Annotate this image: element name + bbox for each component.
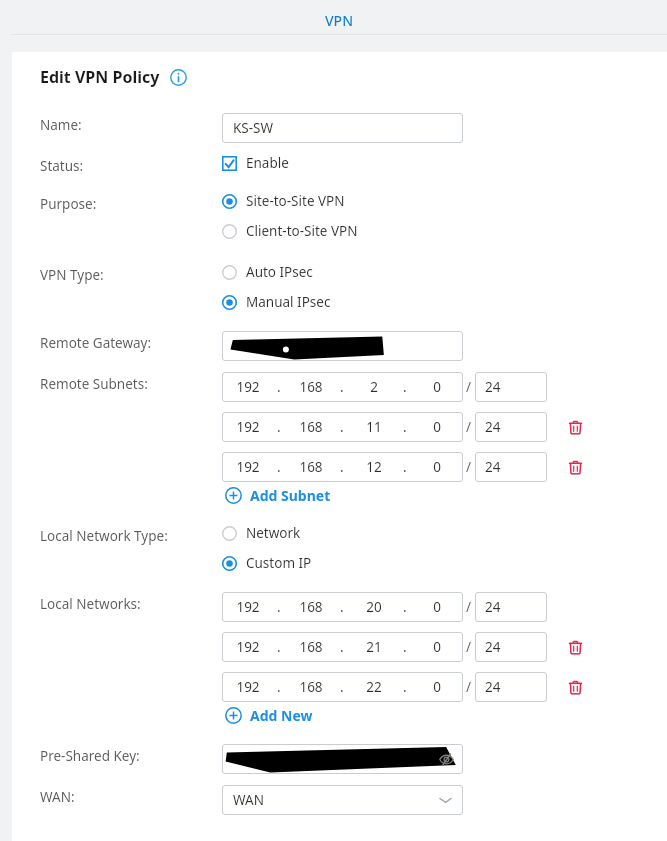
- staticText: .: [340, 458, 344, 476]
- staticText: 192: [236, 378, 260, 396]
- button[interactable]: Custom IP: [222, 554, 312, 572]
- staticText: .: [340, 678, 344, 696]
- staticText: 24: [485, 458, 501, 476]
- button[interactable]: 24: [475, 592, 547, 622]
- staticText: 0: [433, 378, 441, 396]
- staticText: 20: [366, 598, 382, 616]
- button[interactable]: Information: [169, 68, 187, 86]
- button[interactable]: Delete: [564, 416, 586, 438]
- button[interactable]: KS-SW: [222, 113, 463, 143]
- staticText: .: [403, 638, 407, 656]
- staticText: VPN Type:: [40, 266, 104, 284]
- staticText: Remote Gateway:: [40, 334, 152, 352]
- staticText: Local Networks:: [40, 595, 141, 613]
- staticText: 168: [299, 598, 323, 616]
- staticText: 24: [485, 638, 501, 656]
- staticText: 2: [370, 378, 378, 396]
- staticText: 12: [366, 458, 382, 476]
- staticText: .: [403, 678, 407, 696]
- button[interactable]: 24: [475, 632, 547, 662]
- staticText: /: [466, 678, 472, 696]
- staticText: WAN: [233, 791, 264, 809]
- staticText: 168: [299, 418, 323, 436]
- staticText: /: [466, 418, 472, 436]
- button[interactable]: Delete: [564, 456, 586, 478]
- staticText: 192: [236, 458, 260, 476]
- staticText: Name:: [40, 116, 82, 134]
- button[interactable]: [222, 331, 463, 361]
- staticText: 0: [433, 458, 441, 476]
- staticText: 0: [433, 638, 441, 656]
- staticText: Auto IPsec: [246, 263, 313, 281]
- button[interactable]: 24: [475, 672, 547, 702]
- staticText: 24: [485, 418, 501, 436]
- button[interactable]: Add New: [225, 706, 313, 725]
- staticText: Add Subnet: [250, 486, 331, 505]
- staticText: /: [466, 598, 472, 616]
- staticText: Network: [246, 524, 301, 542]
- staticText: 22: [366, 678, 382, 696]
- staticText: Enable: [246, 154, 289, 172]
- staticText: Client-to-Site VPN: [246, 222, 358, 240]
- staticText: /: [466, 458, 472, 476]
- staticText: 24: [485, 598, 501, 616]
- button[interactable]: Delete: [564, 636, 586, 658]
- button[interactable]: 192: [222, 632, 463, 662]
- staticText: .: [277, 418, 281, 436]
- staticText: Add New: [250, 706, 313, 725]
- staticText: Edit VPN Policy: [40, 66, 160, 88]
- button[interactable]: Auto IPsec: [222, 263, 313, 281]
- staticText: KS-SW: [233, 119, 274, 137]
- staticText: Pre-Shared Key:: [40, 747, 140, 765]
- staticText: Site-to-Site VPN: [246, 192, 345, 210]
- staticText: .: [340, 378, 344, 396]
- staticText: 168: [299, 678, 323, 696]
- button[interactable]: 24: [475, 412, 547, 442]
- button[interactable]: Client-to-Site VPN: [222, 222, 358, 240]
- button[interactable]: Add Subnet: [225, 486, 331, 505]
- button[interactable]: 192: [222, 672, 463, 702]
- staticText: 192: [236, 678, 260, 696]
- staticText: Custom IP: [246, 554, 312, 572]
- staticText: .: [277, 638, 281, 656]
- staticText: 192: [236, 598, 260, 616]
- staticText: 0: [433, 418, 441, 436]
- staticText: 192: [236, 638, 260, 656]
- staticText: Purpose:: [40, 195, 97, 213]
- button[interactable]: Enable: [222, 154, 289, 172]
- staticText: .: [340, 598, 344, 616]
- staticText: .: [403, 458, 407, 476]
- button[interactable]: WAN: [222, 785, 463, 815]
- button[interactable]: 192: [222, 372, 463, 402]
- button[interactable]: 192: [222, 412, 463, 442]
- staticText: 24: [485, 378, 501, 396]
- button[interactable]: 24: [475, 372, 547, 402]
- staticText: 192: [236, 418, 260, 436]
- staticText: 168: [299, 458, 323, 476]
- staticText: Local Network Type:: [40, 527, 168, 545]
- button[interactable]: Network: [222, 524, 301, 542]
- staticText: 11: [366, 418, 382, 436]
- staticText: .: [403, 378, 407, 396]
- staticText: .: [277, 598, 281, 616]
- staticText: Status:: [40, 157, 84, 175]
- button[interactable]: [222, 744, 463, 774]
- staticText: /: [466, 638, 472, 656]
- staticText: .: [340, 418, 344, 436]
- staticText: 0: [433, 678, 441, 696]
- staticText: 21: [366, 638, 382, 656]
- button[interactable]: 192: [222, 452, 463, 482]
- button[interactable]: Manual IPsec: [222, 293, 331, 311]
- staticText: 168: [299, 378, 323, 396]
- staticText: 168: [299, 638, 323, 656]
- button[interactable]: 24: [475, 452, 547, 482]
- button[interactable]: 192: [222, 592, 463, 622]
- staticText: .: [403, 598, 407, 616]
- staticText: VPN: [325, 11, 354, 30]
- staticText: 0: [433, 598, 441, 616]
- staticText: .: [277, 458, 281, 476]
- button[interactable]: VPN: [11, 0, 667, 36]
- button[interactable]: Site-to-Site VPN: [222, 192, 345, 210]
- button[interactable]: Delete: [564, 676, 586, 698]
- staticText: Manual IPsec: [246, 293, 331, 311]
